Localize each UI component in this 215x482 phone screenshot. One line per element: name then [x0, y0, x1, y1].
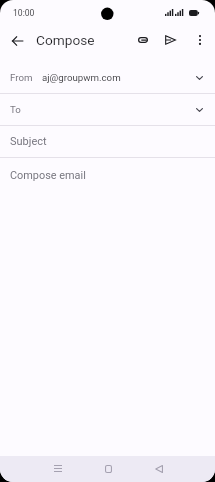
button[interactable]: Attach file [131, 28, 155, 52]
button[interactable]: Compose email [10, 158, 215, 190]
staticText: 10:00 [13, 8, 35, 18]
button[interactable]: Home [95, 456, 122, 482]
staticText: Compose email [10, 169, 86, 182]
button[interactable]: Send [158, 28, 182, 52]
button[interactable]: More options [188, 28, 212, 52]
button[interactable]: To [0, 94, 215, 126]
staticText: aj@groupwm.com [42, 72, 121, 83]
button[interactable]: Back [145, 456, 172, 482]
staticText: Subject [10, 135, 47, 148]
button[interactable]: Subject [0, 126, 215, 158]
button[interactable]: From [0, 62, 215, 94]
button[interactable]: Back [5, 29, 29, 53]
staticText: Compose [36, 32, 95, 48]
staticText: To [10, 104, 21, 115]
staticText: From [10, 72, 33, 83]
button[interactable]: Recent apps [44, 455, 71, 481]
